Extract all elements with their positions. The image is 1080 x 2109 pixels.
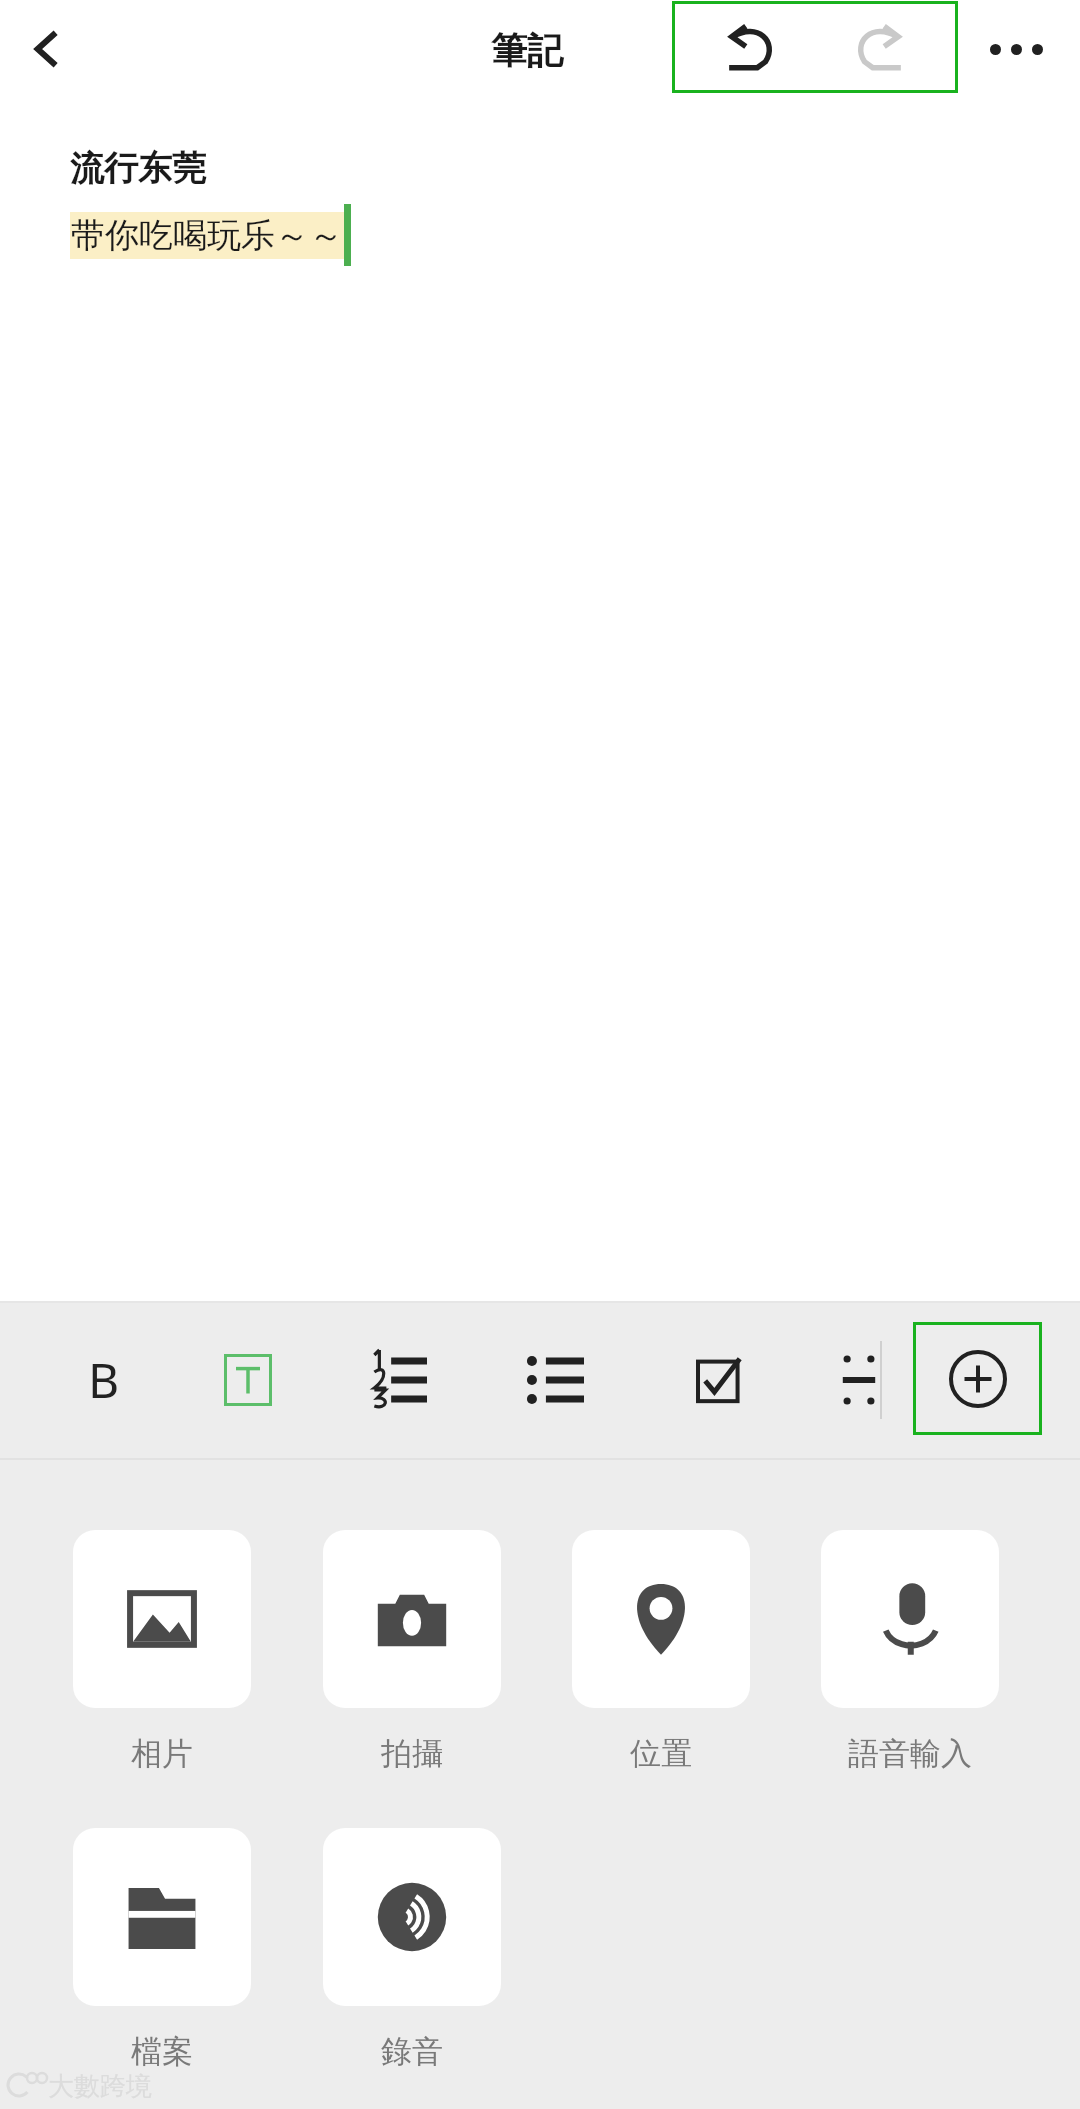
button[interactable]: Back <box>6 8 88 90</box>
button[interactable]: Redo <box>829 3 929 91</box>
staticText: 筆記 <box>491 28 563 73</box>
button[interactable]: Format <box>54 1301 154 1458</box>
staticText: 檔案 <box>131 2032 193 2071</box>
staticText: 大數跨境 <box>48 2070 152 2103</box>
button[interactable]: Format <box>198 1301 298 1458</box>
button[interactable]: Format <box>349 1301 449 1458</box>
button[interactable]: 語音輸入 <box>821 1530 999 1773</box>
staticText: 相片 <box>131 1734 193 1773</box>
staticText: 位置 <box>630 1734 692 1773</box>
staticText: 带你吃喝玩乐～～ <box>71 214 343 257</box>
staticText: 流行东莞 <box>70 147 206 190</box>
staticText: 錄音 <box>381 2032 443 2071</box>
button[interactable]: 相片 <box>73 1530 251 1773</box>
button[interactable]: More options <box>968 4 1064 94</box>
staticText: 拍攝 <box>381 1734 443 1773</box>
staticText: B <box>88 1347 120 1412</box>
button[interactable]: Format <box>506 1301 606 1458</box>
button[interactable]: Format <box>809 1301 909 1458</box>
staticText: 語音輸入 <box>848 1734 972 1773</box>
button[interactable]: 檔案 <box>73 1828 251 2071</box>
button[interactable]: 拍攝 <box>323 1530 501 1773</box>
button[interactable]: 位置 <box>572 1530 750 1773</box>
button[interactable]: 錄音 <box>323 1828 501 2071</box>
button[interactable]: Undo <box>701 3 801 91</box>
button[interactable]: Format <box>669 1301 769 1458</box>
button[interactable]: Add attachment <box>913 1322 1042 1435</box>
